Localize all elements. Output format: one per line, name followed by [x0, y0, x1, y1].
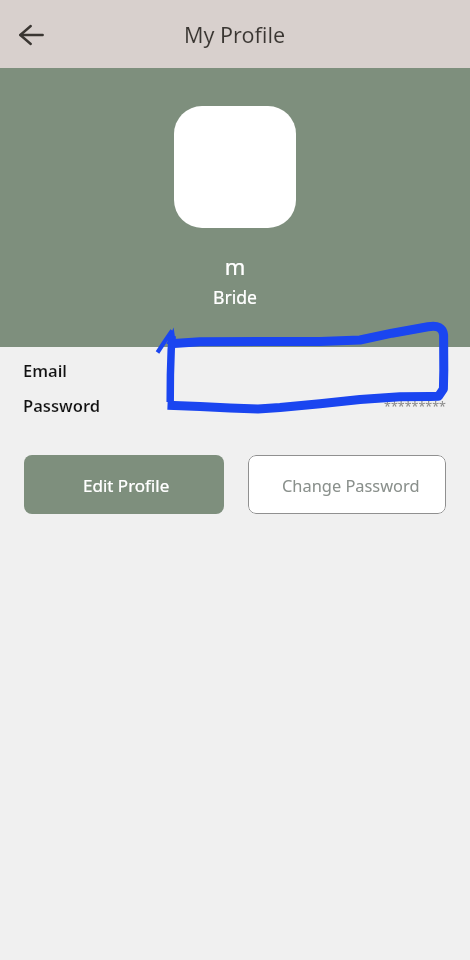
- staticText: m: [0, 251, 470, 281]
- button[interactable]: Profile photo: [174, 106, 296, 228]
- button[interactable]: Edit Profile: [24, 455, 224, 514]
- staticText: *********: [384, 398, 446, 415]
- staticText: Password: [23, 394, 101, 416]
- staticText: Edit Profile: [83, 474, 170, 497]
- staticText: My Profile: [184, 20, 286, 49]
- staticText: Bride: [0, 285, 470, 309]
- button[interactable]: Back: [9, 13, 53, 57]
- staticText: Change Password: [282, 474, 420, 496]
- staticText: Email: [23, 359, 68, 381]
- button[interactable]: Change Password: [248, 455, 446, 514]
